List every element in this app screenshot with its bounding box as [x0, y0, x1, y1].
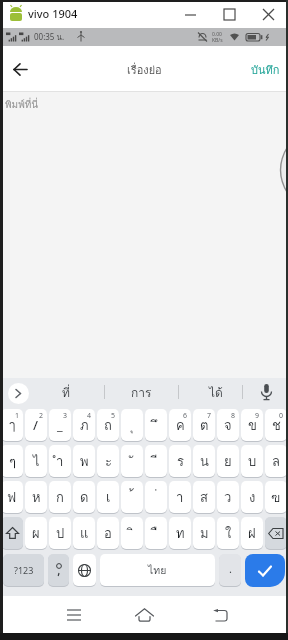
button[interactable]: ?123 [3, 554, 44, 586]
button[interactable]: แ [73, 517, 95, 549]
button[interactable]: ข [241, 409, 263, 441]
button[interactable]: _ [49, 409, 71, 441]
staticText: ั [130, 451, 134, 472]
button[interactable] [1, 517, 23, 549]
button[interactable]: น [193, 445, 215, 477]
staticText: า [176, 487, 184, 508]
staticText: 3 [63, 411, 68, 421]
button[interactable] [8, 383, 29, 404]
button[interactable]: ป [49, 517, 71, 549]
staticText: 00:35 น. [34, 31, 65, 44]
staticText: ๅ [9, 415, 16, 436]
staticText: ว [224, 487, 232, 508]
button[interactable] [56, 600, 92, 630]
button[interactable] [126, 600, 162, 630]
staticText: ้ [130, 487, 134, 508]
button[interactable]: ว [217, 481, 239, 513]
staticText: 7 [207, 411, 212, 421]
staticText: _ [57, 416, 63, 434]
button[interactable]: ะ [97, 445, 119, 477]
staticText: 8 [231, 411, 236, 421]
button[interactable]: ั [121, 445, 143, 477]
button[interactable] [6, 55, 34, 83]
staticText: พ [80, 451, 89, 472]
staticText: ส [200, 487, 208, 508]
staticText: ข [248, 415, 257, 436]
button[interactable]: อ [97, 517, 119, 549]
button[interactable]: ได้ [190, 378, 242, 406]
button[interactable]: ส [193, 481, 215, 513]
staticText: . [229, 561, 232, 576]
button[interactable] [245, 554, 285, 587]
button[interactable]: . [219, 554, 241, 586]
staticText: อ [104, 523, 112, 544]
button[interactable]: จ [217, 409, 239, 441]
button[interactable] [48, 554, 69, 586]
staticText: ใ [225, 523, 232, 544]
button[interactable] [252, 378, 280, 406]
staticText: 9 [255, 411, 260, 421]
button[interactable]: ้ [121, 481, 143, 513]
button[interactable]: ่ [145, 481, 167, 513]
button[interactable]: ห [25, 481, 47, 513]
button[interactable]: ื [145, 517, 167, 549]
button[interactable] [265, 517, 287, 549]
staticText: ก [56, 487, 64, 508]
staticText: ฟ [7, 487, 17, 508]
button[interactable]: ิ [121, 517, 143, 549]
button[interactable]: เ [97, 481, 119, 513]
staticText: ี [154, 451, 158, 472]
staticText: พิมพ์ที่นี่ [5, 97, 39, 113]
button[interactable]: ๆ [1, 445, 23, 477]
staticText: จ [224, 415, 232, 436]
staticText: ล [272, 451, 280, 472]
button[interactable]: ย [217, 445, 239, 477]
button[interactable]: า [169, 481, 191, 513]
button[interactable]: พ [73, 445, 95, 477]
staticText: ่ [154, 487, 158, 508]
button[interactable]: ต [193, 409, 215, 441]
staticText: ม [200, 523, 209, 544]
button[interactable]: ม [193, 517, 215, 549]
staticText: ฃ [271, 487, 281, 508]
staticText: ?123 [14, 564, 34, 576]
button[interactable]: ที่ [40, 378, 92, 406]
staticText: ย [224, 451, 232, 472]
staticText: vivo 1904 [28, 6, 78, 21]
button[interactable]: ผ [25, 517, 47, 549]
button[interactable]: ภ [73, 409, 95, 441]
button[interactable]: ร [169, 445, 191, 477]
button[interactable] [73, 554, 96, 586]
button[interactable]: ด [73, 481, 95, 513]
button[interactable]: ฝ [241, 517, 263, 549]
staticText: ๆ [9, 451, 16, 472]
staticText: KB/s [212, 37, 223, 44]
button[interactable]: ฟ [1, 481, 23, 513]
button[interactable]: ึ [145, 409, 167, 441]
button[interactable]: ุ [121, 409, 143, 441]
button[interactable]: ี [145, 445, 167, 477]
button[interactable]: ใ [217, 517, 239, 549]
button[interactable]: ท [169, 517, 191, 549]
button[interactable]: ๅ [1, 409, 23, 441]
button[interactable]: ถ [97, 409, 119, 441]
button[interactable]: ำ [49, 445, 71, 477]
button[interactable]: ค [169, 409, 191, 441]
staticText: 4 [87, 411, 92, 421]
button[interactable]: ช [265, 409, 287, 441]
button[interactable]: ไทย [100, 554, 215, 586]
button[interactable]: ง [241, 481, 263, 513]
staticText: ด [80, 487, 89, 508]
staticText: ไทย [148, 562, 167, 579]
button[interactable]: การ [115, 378, 167, 406]
button[interactable]: / [25, 409, 47, 441]
button[interactable]: บ [241, 445, 263, 477]
button[interactable] [202, 600, 238, 630]
button[interactable]: ไ [25, 445, 47, 477]
button[interactable]: บันทึก [251, 61, 280, 78]
button[interactable]: ฃ [265, 481, 287, 513]
button[interactable]: ก [49, 481, 71, 513]
staticText: ที่ [62, 383, 70, 402]
staticText: 2 [39, 411, 44, 421]
button[interactable]: ล [265, 445, 287, 477]
